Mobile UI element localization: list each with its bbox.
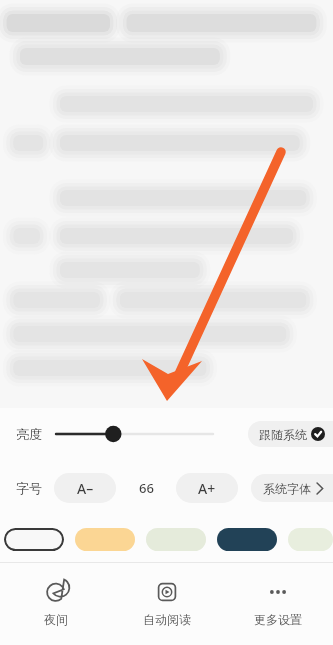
button[interactable]: 更多设置 bbox=[222, 563, 333, 645]
staticText: 66 bbox=[139, 479, 154, 497]
button[interactable]: Theme colour bbox=[146, 528, 206, 551]
button[interactable]: Theme colour bbox=[75, 528, 135, 551]
button[interactable]: 自动阅读 bbox=[111, 563, 222, 645]
button[interactable]: Theme colour bbox=[217, 528, 277, 551]
staticText: 亮度 bbox=[16, 426, 42, 442]
other: Arrow pointing to brightness settings bbox=[0, 0, 333, 645]
staticText: A+ bbox=[198, 479, 216, 498]
button[interactable]: Theme colour bbox=[4, 528, 64, 551]
staticText: 字号 bbox=[16, 480, 42, 496]
staticText: 系统字体 bbox=[263, 481, 311, 496]
staticText: 自动阅读 bbox=[143, 612, 191, 627]
button[interactable]: 系统字体 bbox=[251, 474, 333, 502]
button[interactable]: A+ bbox=[176, 473, 238, 503]
button[interactable]: Theme colour bbox=[288, 528, 333, 551]
staticText: 跟随系统 bbox=[259, 427, 307, 442]
button[interactable]: 跟随系统 bbox=[248, 421, 333, 447]
button[interactable]: A– bbox=[54, 473, 116, 503]
button[interactable]: 夜间 bbox=[0, 563, 111, 645]
staticText: 夜间 bbox=[44, 612, 68, 627]
staticText: 更多设置 bbox=[254, 612, 302, 627]
button[interactable] bbox=[56, 419, 213, 449]
staticText: A– bbox=[77, 479, 94, 498]
